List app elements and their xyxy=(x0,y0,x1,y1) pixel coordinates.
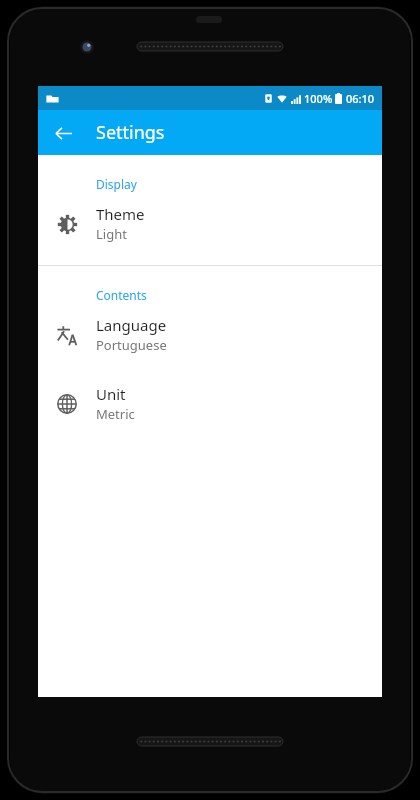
staticText: Light xyxy=(96,225,127,243)
staticText: Portuguese xyxy=(96,336,167,354)
staticText: Display xyxy=(96,176,137,192)
staticText: Unit xyxy=(96,384,126,404)
button[interactable]: Theme xyxy=(38,198,382,249)
button[interactable]: Back xyxy=(46,116,80,150)
button[interactable]: Language xyxy=(38,309,382,360)
staticText: Language xyxy=(96,315,167,335)
staticText: Metric xyxy=(96,405,135,423)
staticText: 06:10 xyxy=(346,91,375,106)
staticText: Theme xyxy=(96,204,145,224)
button[interactable]: Unit xyxy=(38,378,382,429)
staticText: Contents xyxy=(96,287,147,303)
staticText: Settings xyxy=(96,120,165,145)
staticText: 100% xyxy=(304,91,333,106)
